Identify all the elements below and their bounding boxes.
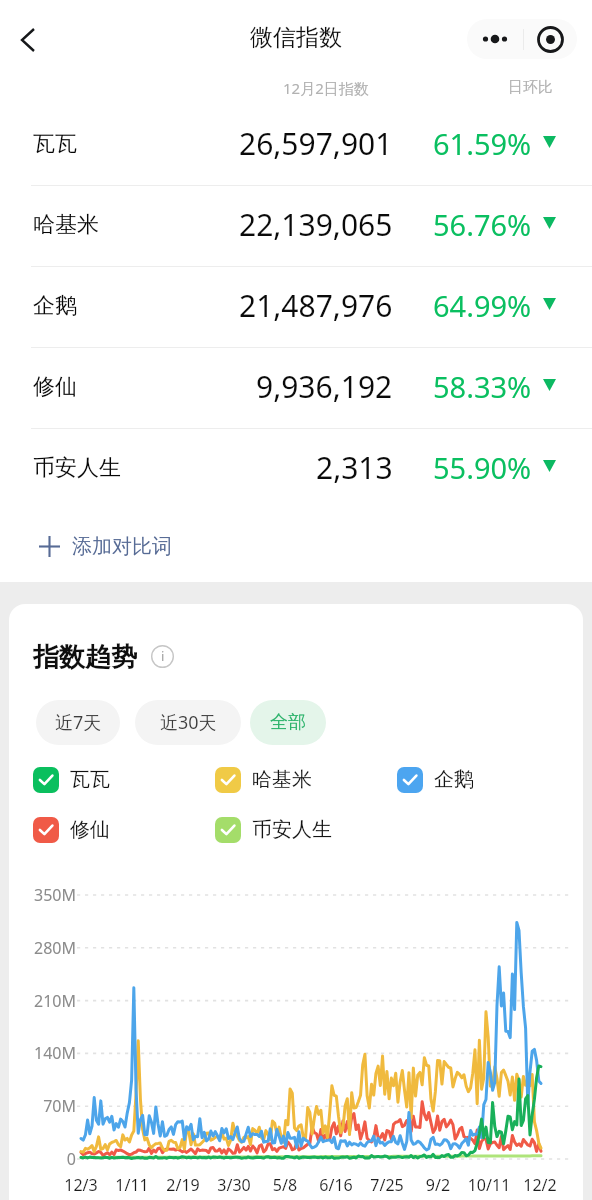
button[interactable]: 瓦瓦 <box>33 765 110 795</box>
staticText: 指数趋势 <box>33 641 137 674</box>
staticText: 26,597,901 <box>239 123 393 164</box>
button[interactable]: 哈基米 <box>0 186 592 267</box>
staticText: 12/3 <box>51 1174 111 1196</box>
staticText: 日环比 <box>508 78 553 97</box>
staticText: 64.99% <box>433 286 532 325</box>
button[interactable]: 修仙 <box>33 815 110 845</box>
button[interactable]: More options <box>467 19 523 59</box>
button[interactable]: 币安人生 <box>215 815 332 845</box>
staticText: 70M <box>23 1095 76 1117</box>
staticText: 添加对比词 <box>72 534 172 559</box>
button[interactable]: 币安人生 <box>0 429 592 510</box>
staticText: 56.76% <box>433 205 532 244</box>
staticText: 55.90% <box>433 448 532 487</box>
staticText: 9,936,192 <box>256 366 393 407</box>
staticText: 微信指数 <box>250 23 342 52</box>
staticText: 10/11 <box>459 1174 519 1196</box>
staticText: 2/19 <box>153 1174 213 1196</box>
button[interactable]: 近7天 <box>36 700 120 745</box>
button[interactable]: 瓦瓦 <box>0 105 592 186</box>
button[interactable]: Close mini program <box>524 19 577 59</box>
staticText: 瓦瓦 <box>70 767 110 792</box>
staticText: 近30天 <box>160 710 217 735</box>
button[interactable]: 企鹅 <box>0 267 592 348</box>
button[interactable]: 添加对比词 <box>0 510 592 582</box>
staticText: 350M <box>23 884 76 906</box>
button[interactable]: Back <box>5 16 53 64</box>
staticText: 2,313 <box>316 447 393 488</box>
staticText: 修仙 <box>33 373 77 401</box>
staticText: 0 <box>23 1148 76 1170</box>
staticText: 140M <box>23 1042 76 1064</box>
button[interactable]: Info <box>151 645 174 668</box>
staticText: 22,139,065 <box>239 204 393 245</box>
staticText: 3/30 <box>204 1174 264 1196</box>
staticText: 5/8 <box>255 1174 315 1196</box>
staticText: 6/16 <box>306 1174 366 1196</box>
staticText: 7/25 <box>357 1174 417 1196</box>
staticText: 9/2 <box>408 1174 468 1196</box>
staticText: 企鹅 <box>434 767 474 792</box>
staticText: 58.33% <box>433 367 532 406</box>
staticText: 全部 <box>270 711 306 734</box>
staticText: 近7天 <box>55 710 102 735</box>
staticText: 12月2日指数 <box>283 78 369 98</box>
staticText: 企鹅 <box>33 292 77 320</box>
staticText: 280M <box>23 937 76 959</box>
staticText: 币安人生 <box>252 817 332 842</box>
staticText: 21,487,976 <box>239 285 393 326</box>
staticText: 12/2 <box>510 1174 570 1196</box>
staticText: 210M <box>23 990 76 1012</box>
button[interactable]: 企鹅 <box>397 765 474 795</box>
button[interactable]: 修仙 <box>0 348 592 429</box>
staticText: 哈基米 <box>33 211 99 239</box>
staticText: 瓦瓦 <box>33 130 77 158</box>
staticText: 61.59% <box>433 124 532 163</box>
staticText: 1/11 <box>102 1174 162 1196</box>
button[interactable]: 全部 <box>250 700 326 745</box>
staticText: 币安人生 <box>33 454 121 482</box>
button[interactable]: 哈基米 <box>215 765 312 795</box>
staticText: 哈基米 <box>252 767 312 792</box>
staticText: 修仙 <box>70 817 110 842</box>
button[interactable]: 近30天 <box>135 700 241 745</box>
staticText: i <box>161 647 165 665</box>
